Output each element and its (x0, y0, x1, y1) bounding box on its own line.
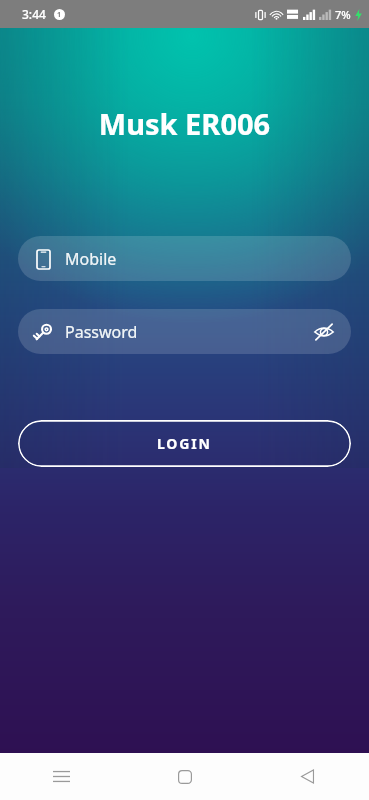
staticText: Musk ER006 (0, 104, 369, 143)
staticText: LOGIN (157, 434, 212, 453)
staticText: 7% (335, 7, 351, 22)
button[interactable]: Home (123, 753, 246, 800)
button[interactable]: LOGIN (18, 420, 351, 467)
staticText: Password (65, 321, 138, 343)
button[interactable]: Back (246, 753, 369, 800)
button[interactable]: Mobile (18, 236, 351, 281)
button[interactable]: Password (18, 309, 351, 354)
button[interactable]: Recent apps (0, 753, 123, 800)
button[interactable]: Show password (311, 319, 337, 345)
staticText: Mobile (65, 248, 117, 270)
staticText: 1 (57, 10, 62, 20)
staticText: 3:44 (22, 6, 46, 22)
